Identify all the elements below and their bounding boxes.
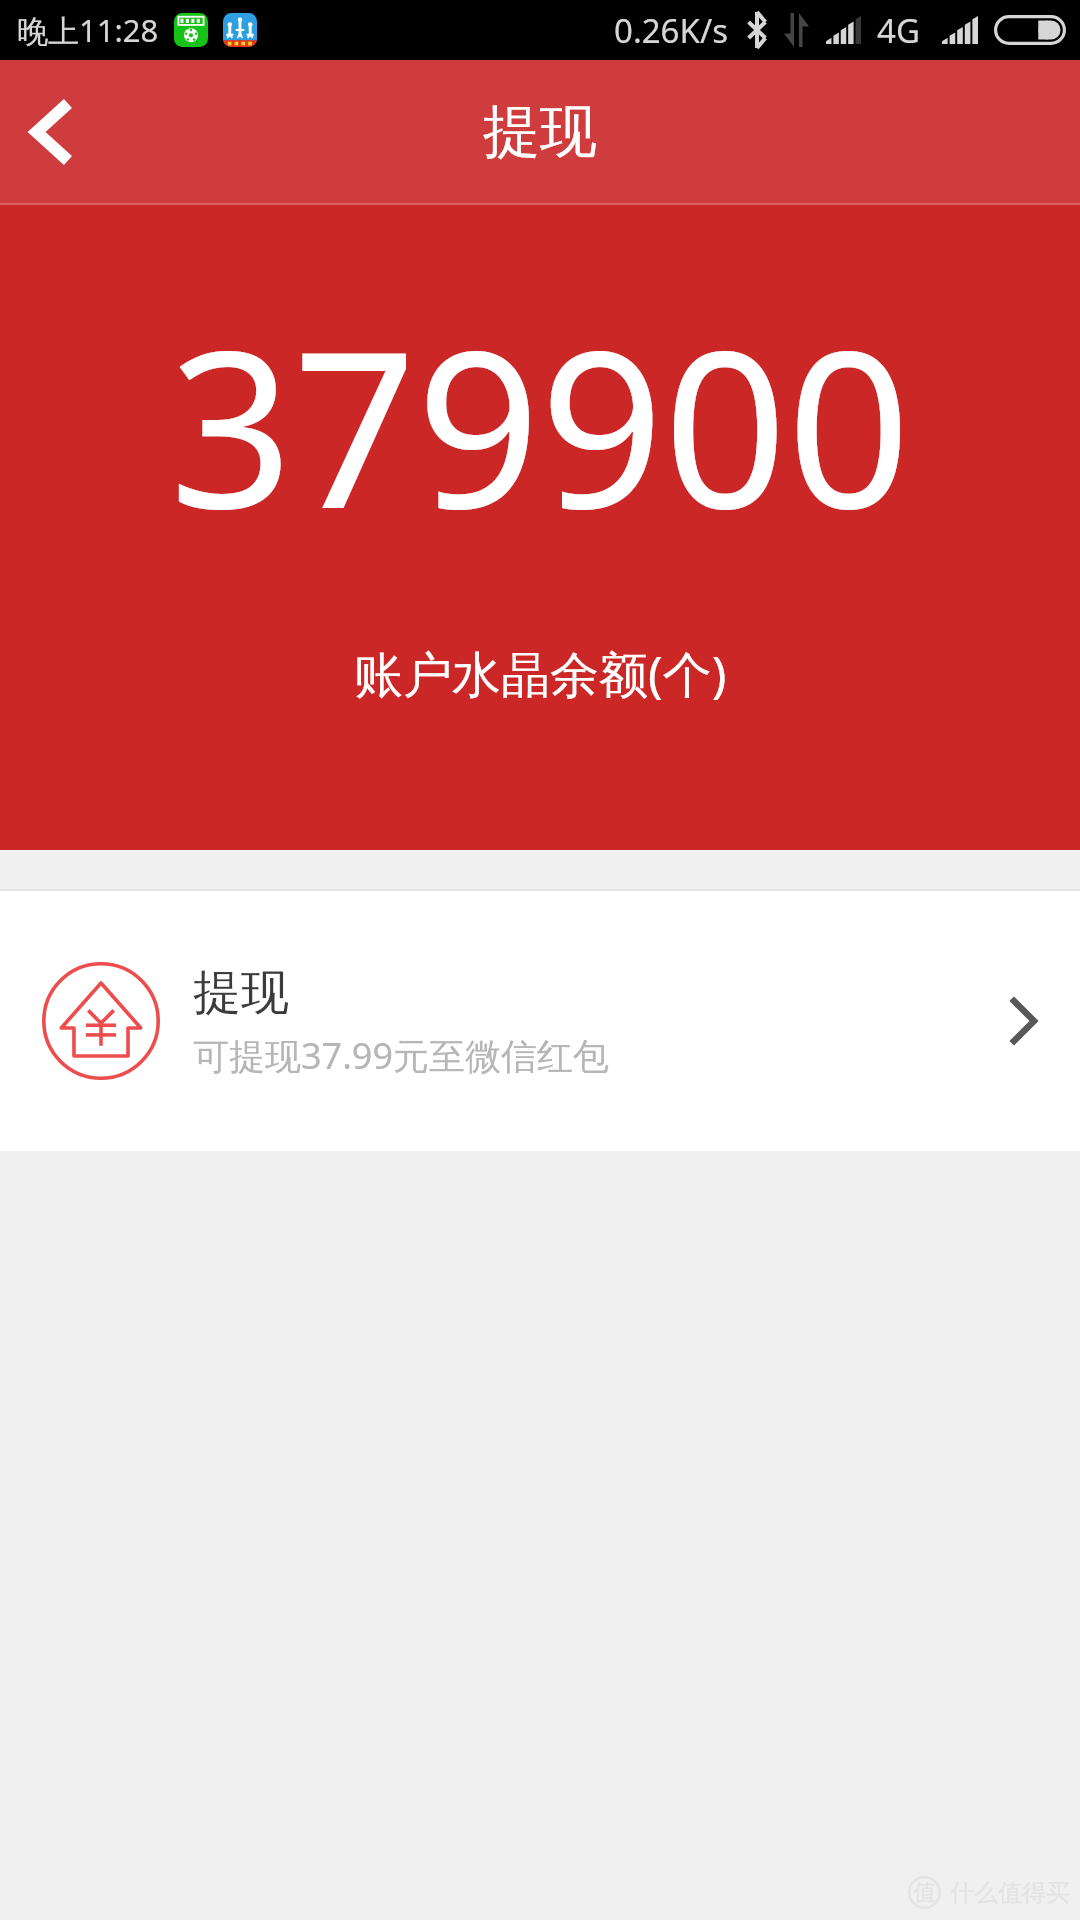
staticText: 值 xyxy=(913,1878,936,1907)
staticText: 0.26K/s xyxy=(614,8,728,53)
staticText: 提现 xyxy=(483,96,597,168)
button[interactable]: 提现 xyxy=(0,891,1080,1151)
staticText: 晚上11:28 xyxy=(17,9,159,51)
staticText: 4G xyxy=(877,8,920,53)
staticText: 账户水晶余额(个) xyxy=(354,640,727,707)
button[interactable]: Back xyxy=(0,82,100,182)
staticText: 什么值得买 xyxy=(950,1878,1070,1908)
staticText: 提现 xyxy=(193,963,289,1023)
staticText: 可提现37.99元至微信红包 xyxy=(193,1031,610,1080)
staticText: 379900 xyxy=(169,277,911,571)
